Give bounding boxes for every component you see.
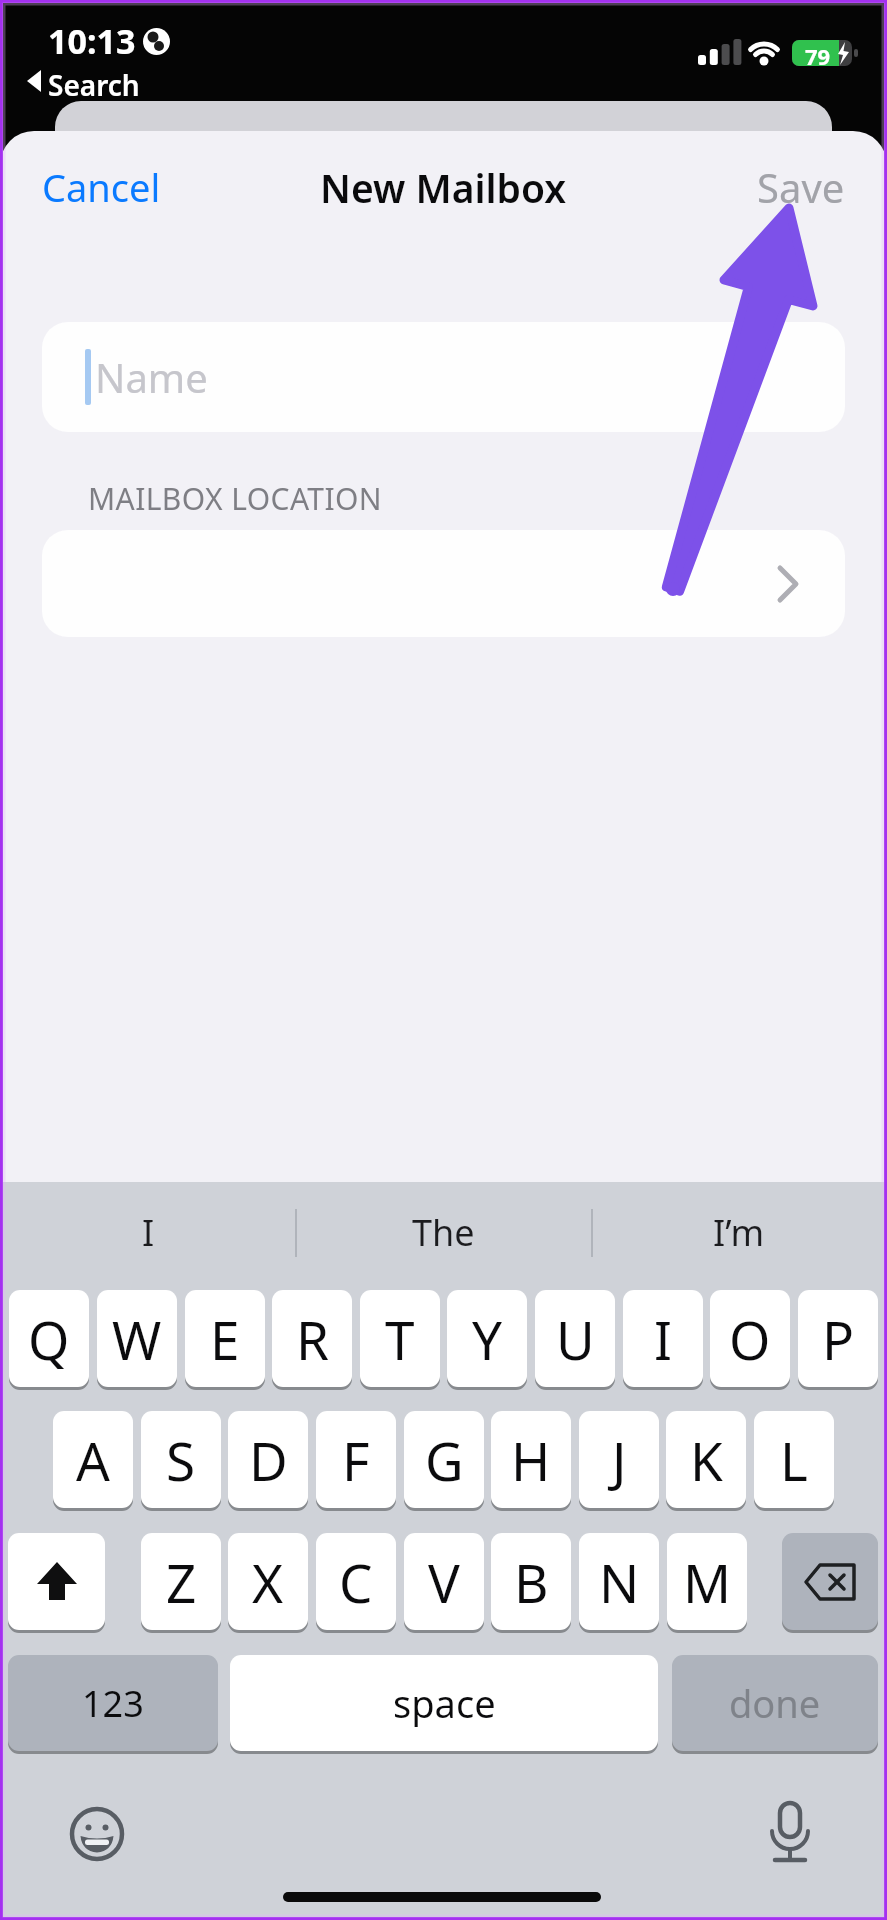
button[interactable]: Name [42, 322, 845, 432]
staticText: A [76, 1424, 110, 1496]
staticText: Name [95, 350, 208, 404]
button[interactable]: P [798, 1290, 878, 1387]
button[interactable]: U [535, 1290, 615, 1387]
staticText: X [252, 1546, 284, 1618]
button[interactable]: G [404, 1411, 484, 1508]
button[interactable]: I’m [611, 1204, 867, 1260]
staticText: R [296, 1303, 329, 1375]
staticText: K [690, 1424, 723, 1496]
button[interactable]: The [315, 1204, 571, 1260]
staticText: 79 [805, 41, 831, 66]
staticText: J [612, 1424, 627, 1496]
staticText: The [412, 1208, 475, 1257]
button[interactable]: K [666, 1411, 746, 1508]
button[interactable]: L [754, 1411, 834, 1508]
button[interactable]: Y [447, 1290, 527, 1387]
button[interactable] [42, 530, 845, 637]
button[interactable] [8, 1533, 105, 1630]
button[interactable]: D [228, 1411, 308, 1508]
staticText: C [339, 1546, 373, 1618]
staticText: P [822, 1303, 855, 1375]
staticText: Q [28, 1303, 70, 1375]
button[interactable]: O [710, 1290, 790, 1387]
staticText: I [654, 1303, 672, 1375]
button[interactable] [756, 1796, 824, 1872]
button[interactable]: N [579, 1533, 659, 1630]
staticText: N [599, 1546, 640, 1618]
button[interactable]: B [491, 1533, 571, 1630]
staticText: MAILBOX LOCATION [88, 478, 383, 518]
staticText: H [511, 1424, 551, 1496]
staticText: W [112, 1303, 162, 1375]
button[interactable]: M [667, 1533, 747, 1630]
staticText: O [729, 1303, 771, 1375]
button[interactable]: W [97, 1290, 177, 1387]
button[interactable]: T [360, 1290, 440, 1387]
staticText: T [385, 1303, 415, 1375]
button[interactable]: Z [141, 1533, 221, 1630]
button[interactable]: F [316, 1411, 396, 1508]
button[interactable]: done [672, 1655, 878, 1751]
staticText: V [428, 1546, 460, 1618]
staticText: L [780, 1424, 808, 1496]
staticText: Search [48, 66, 140, 96]
staticText: Z [166, 1546, 197, 1618]
button[interactable]: X [228, 1533, 308, 1630]
button[interactable]: Search [48, 66, 158, 96]
staticText: B [514, 1546, 549, 1618]
button[interactable]: J [579, 1411, 659, 1508]
staticText: Save [757, 160, 845, 214]
button[interactable]: Cancel [42, 159, 212, 215]
button[interactable]: 123 [8, 1655, 218, 1751]
staticText: Cancel [42, 161, 161, 213]
staticText: done [729, 1677, 821, 1729]
staticText: D [249, 1424, 288, 1496]
button[interactable]: C [316, 1533, 396, 1630]
staticText: New Mailbox [320, 161, 567, 214]
staticText: 10:13 [48, 18, 136, 60]
button[interactable]: E [185, 1290, 265, 1387]
staticText: S [166, 1424, 196, 1496]
button[interactable]: I [20, 1204, 276, 1260]
button[interactable]: R [272, 1290, 352, 1387]
staticText: U [556, 1303, 595, 1375]
staticText: 123 [82, 1679, 144, 1728]
button[interactable]: A [53, 1411, 133, 1508]
button[interactable]: space [230, 1655, 658, 1751]
button[interactable]: H [491, 1411, 571, 1508]
staticText: E [210, 1303, 240, 1375]
button[interactable] [782, 1533, 878, 1630]
button[interactable]: V [404, 1533, 484, 1630]
staticText: M [683, 1546, 732, 1618]
staticText: space [393, 1677, 496, 1729]
button[interactable]: Save [715, 159, 845, 215]
button[interactable]: I [623, 1290, 703, 1387]
button[interactable]: S [141, 1411, 221, 1508]
staticText: Y [472, 1303, 502, 1375]
staticText: G [425, 1424, 464, 1496]
staticText: I [142, 1208, 155, 1257]
staticText: F [342, 1424, 370, 1496]
button[interactable]: Q [9, 1290, 89, 1387]
staticText: I’m [713, 1208, 765, 1257]
button[interactable] [63, 1800, 131, 1868]
